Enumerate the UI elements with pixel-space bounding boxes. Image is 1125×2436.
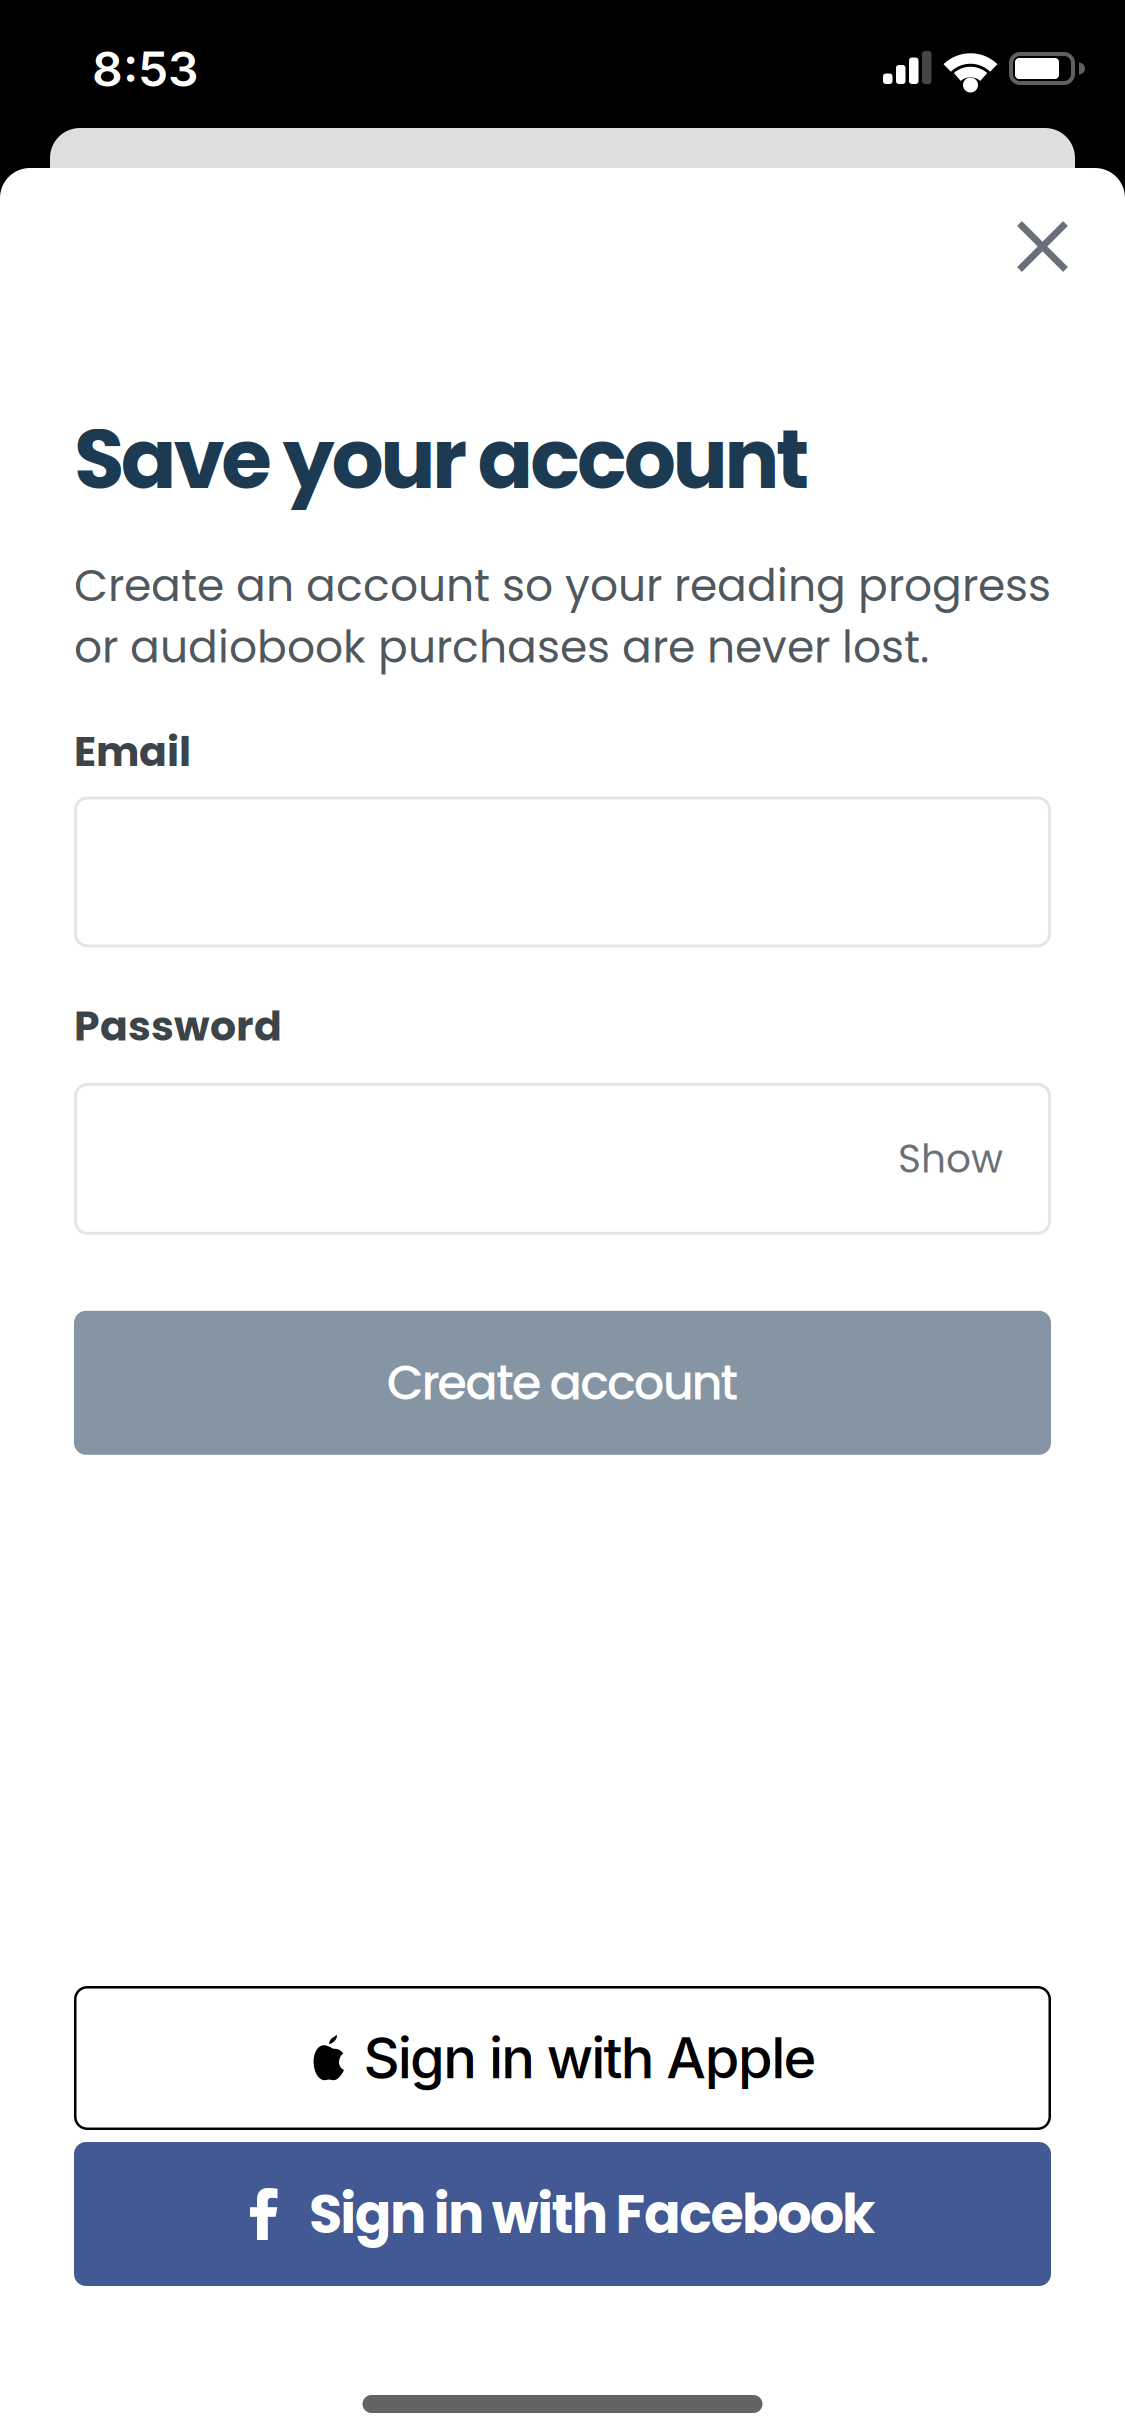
- staticText: Save your account: [74, 402, 809, 517]
- button[interactable]: Create account: [74, 1311, 1051, 1455]
- button[interactable]: Show: [898, 1131, 1051, 1186]
- staticText: Create an account so your reading progre…: [74, 555, 1051, 678]
- staticText: Sign in with Facebook: [309, 2176, 875, 2252]
- staticText: Show: [898, 1131, 1003, 1186]
- staticText: Email: [74, 723, 191, 780]
- staticText: Sign in with Apple: [363, 2024, 817, 2092]
- button[interactable]: [1018, 222, 1067, 271]
- button[interactable]: Sign in with Apple: [74, 1986, 1051, 2130]
- staticText: 8:53: [92, 40, 199, 98]
- staticText: Password: [74, 997, 282, 1055]
- staticText: Create account: [387, 1349, 738, 1416]
- button[interactable]: Sign in with Facebook: [74, 2142, 1051, 2286]
